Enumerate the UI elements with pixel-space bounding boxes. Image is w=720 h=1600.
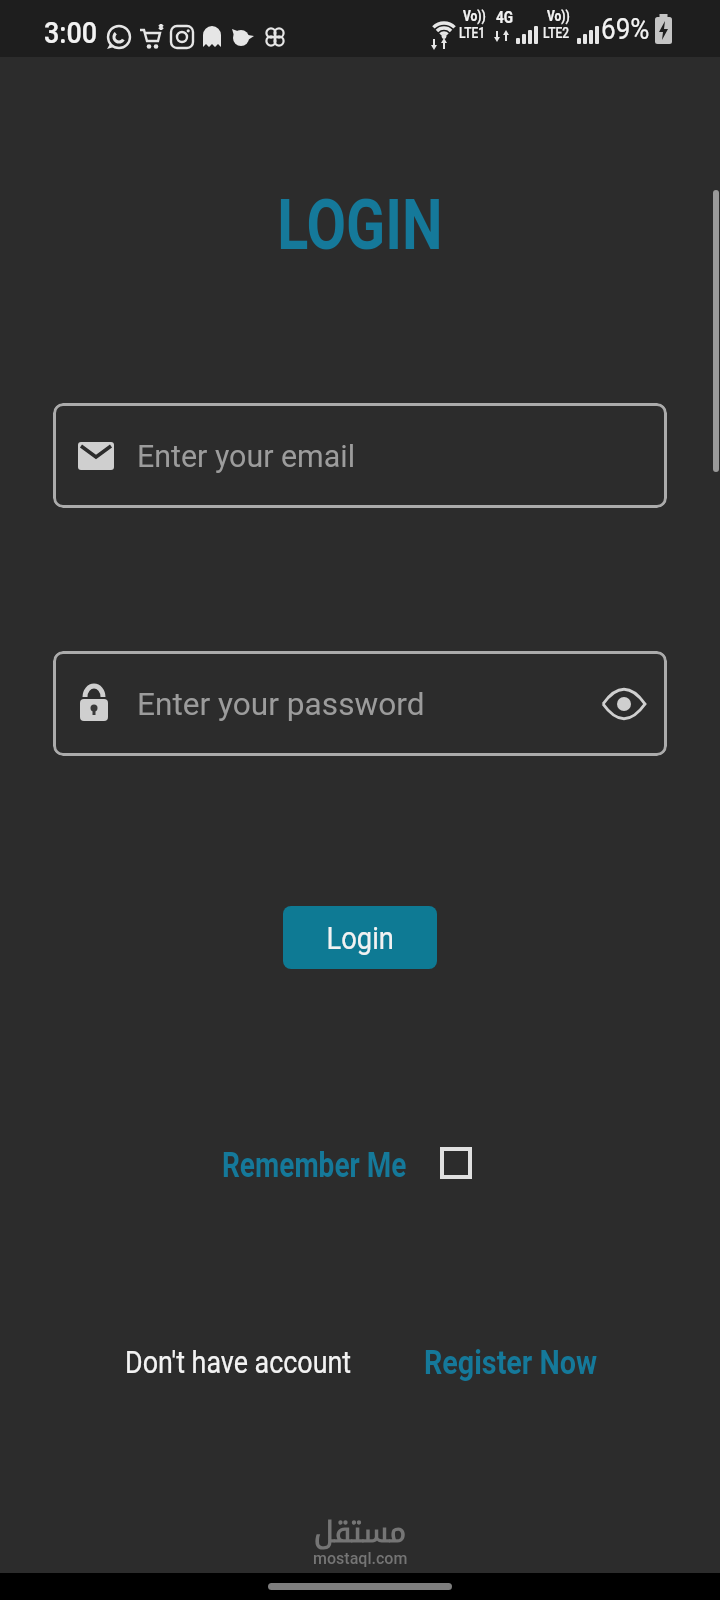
staticText: 4G bbox=[496, 8, 514, 27]
staticText: مستقل bbox=[314, 1505, 407, 1560]
button[interactable]: Register Now bbox=[424, 1343, 623, 1382]
button[interactable]: Enter your email bbox=[53, 403, 667, 508]
staticText: LTE1 bbox=[459, 24, 485, 42]
staticText: mostaql.com bbox=[313, 1549, 408, 1568]
button[interactable] bbox=[440, 1147, 472, 1179]
button[interactable] bbox=[603, 690, 645, 718]
button[interactable]: Login bbox=[283, 906, 437, 969]
staticText: LOGIN bbox=[277, 184, 443, 266]
staticText: LTE2 bbox=[543, 24, 569, 42]
staticText: Vo)) bbox=[547, 7, 570, 25]
button[interactable]: Enter your password bbox=[53, 651, 667, 756]
staticText: Remember Me bbox=[222, 1145, 407, 1186]
staticText: Register Now bbox=[424, 1343, 597, 1382]
staticText: Enter your password bbox=[137, 686, 425, 722]
staticText: 3:00 bbox=[44, 15, 98, 50]
button[interactable]: Remember Me bbox=[222, 1145, 453, 1186]
staticText: Enter your email bbox=[137, 438, 355, 474]
staticText: Login bbox=[327, 920, 394, 956]
staticText: Vo)) bbox=[463, 7, 486, 25]
staticText: 69% bbox=[601, 11, 650, 46]
staticText: Don't have account bbox=[125, 1343, 352, 1381]
